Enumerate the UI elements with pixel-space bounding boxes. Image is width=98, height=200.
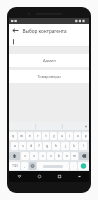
button[interactable]: Ввод (78, 162, 89, 170)
button[interactable]: Назад (9, 24, 22, 37)
button[interactable]: r (34, 132, 41, 140)
staticText: p (85, 134, 87, 138)
staticText: x (33, 154, 35, 158)
button[interactable]: c (39, 152, 46, 160)
staticText: q (12, 134, 14, 138)
staticText: b (58, 154, 60, 158)
staticText: s (22, 144, 24, 148)
staticText: Товароведы (37, 74, 61, 79)
button[interactable]: Пробел (37, 162, 69, 170)
staticText: f (38, 144, 40, 148)
button[interactable]: Обзор (49, 171, 69, 182)
staticText: u (61, 134, 63, 138)
button[interactable]: m (71, 152, 78, 160)
button[interactable]: w (18, 132, 25, 140)
staticText: t (45, 134, 47, 138)
button[interactable]: j (61, 142, 69, 150)
staticText: h (55, 144, 57, 148)
button[interactable]: z (21, 152, 29, 160)
staticText: o (77, 134, 79, 138)
button[interactable]: i (66, 132, 73, 140)
staticText: n (66, 154, 68, 158)
button[interactable]: , (21, 162, 28, 170)
button[interactable]: b (55, 152, 62, 160)
button[interactable]: a (11, 142, 18, 150)
button[interactable]: g (43, 142, 51, 150)
button[interactable]: Главный экран (29, 171, 49, 182)
button[interactable]: Назад (9, 171, 29, 182)
button[interactable]: v (47, 152, 54, 160)
button[interactable]: k (70, 142, 78, 150)
staticText: Выбор контрагента (22, 28, 67, 34)
staticText: g (46, 144, 48, 148)
staticText: l (83, 144, 84, 148)
button[interactable]: d (27, 142, 34, 150)
staticText: c (42, 154, 44, 158)
button[interactable]: x (30, 152, 38, 160)
staticText: m (73, 154, 76, 158)
staticText: , (24, 164, 25, 168)
button[interactable]: e (26, 132, 33, 140)
staticText: Админ (43, 58, 56, 63)
staticText: ?123 (12, 164, 18, 168)
button[interactable]: l (79, 142, 87, 150)
button[interactable]: n (63, 152, 70, 160)
button[interactable]: h (52, 142, 60, 150)
button[interactable] (9, 37, 89, 47)
staticText: y (53, 134, 55, 138)
button[interactable]: . (70, 162, 77, 170)
button[interactable]: o (74, 132, 81, 140)
button[interactable]: Настройки (29, 162, 36, 170)
button[interactable]: Товароведы (9, 70, 89, 83)
staticText: i (69, 134, 70, 138)
button[interactable]: t (42, 132, 49, 140)
button[interactable]: y (50, 132, 57, 140)
staticText: j (65, 144, 66, 148)
staticText: r (37, 134, 39, 138)
button[interactable]: Удалить (79, 152, 89, 160)
button[interactable]: u (58, 132, 65, 140)
button[interactable]: p (82, 132, 89, 140)
button[interactable]: ?123 (9, 162, 20, 170)
button[interactable]: Клавиатура (69, 171, 89, 182)
button[interactable]: f (35, 142, 42, 150)
staticText: z (24, 154, 26, 158)
staticText: a (14, 144, 16, 148)
button[interactable]: s (19, 142, 26, 150)
button[interactable]: Админ (9, 54, 89, 67)
staticText: . (73, 164, 74, 168)
staticText: k (73, 144, 75, 148)
staticText: v (50, 154, 52, 158)
button[interactable]: Shift (9, 152, 20, 160)
staticText: e (29, 134, 31, 138)
staticText: d (30, 144, 32, 148)
button[interactable]: q (9, 132, 17, 140)
staticText: w (20, 134, 23, 138)
